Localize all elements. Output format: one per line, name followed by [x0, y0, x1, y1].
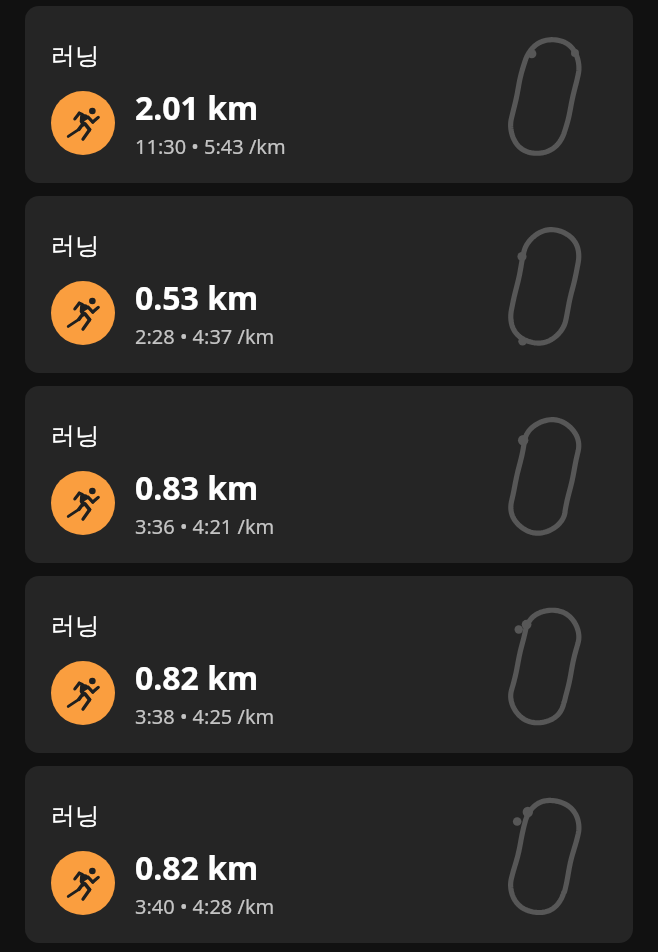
button[interactable]: 러닝 — [25, 6, 633, 183]
other: Route map — [508, 417, 582, 535]
staticText: 3:36 • 4:21 /km — [135, 513, 275, 540]
button[interactable]: 러닝 — [25, 196, 633, 373]
staticText: 11:30 • 5:43 /km — [135, 133, 286, 160]
other: Route map — [508, 797, 582, 915]
staticText: 0.82 km — [135, 846, 259, 890]
other: Route map — [508, 227, 582, 345]
staticText: 3:38 • 4:25 /km — [135, 703, 275, 730]
staticText: 0.83 km — [135, 466, 259, 510]
staticText: 러닝 — [51, 801, 99, 831]
staticText: 러닝 — [51, 421, 99, 451]
other: Running activity — [51, 661, 115, 725]
button[interactable]: 러닝 — [25, 386, 633, 563]
staticText: 러닝 — [51, 41, 99, 71]
staticText: 3:40 • 4:28 /km — [135, 893, 275, 920]
staticText: 러닝 — [51, 231, 99, 261]
staticText: 0.53 km — [135, 276, 259, 320]
staticText: 2.01 km — [135, 86, 259, 130]
staticText: 0.82 km — [135, 656, 259, 700]
other: Route map — [508, 607, 582, 725]
other: Route map — [508, 37, 582, 155]
other: Running activity — [51, 91, 115, 155]
button[interactable]: 러닝 — [25, 766, 633, 943]
other: Running activity — [51, 851, 115, 915]
button[interactable]: 러닝 — [25, 576, 633, 753]
staticText: 2:28 • 4:37 /km — [135, 323, 275, 350]
other: Running activity — [51, 281, 115, 345]
staticText: 러닝 — [51, 611, 99, 641]
other: Running activity — [51, 471, 115, 535]
